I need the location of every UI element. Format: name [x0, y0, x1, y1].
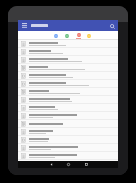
button[interactable]	[18, 136, 118, 144]
button[interactable]	[18, 40, 118, 48]
button[interactable]	[18, 80, 118, 88]
button[interactable]	[18, 152, 118, 160]
button[interactable]	[18, 64, 118, 72]
button[interactable]	[18, 128, 118, 136]
button[interactable]: Slides	[75, 31, 81, 40]
button[interactable]	[18, 144, 118, 152]
button[interactable]	[18, 112, 118, 120]
button[interactable]: Search	[108, 22, 116, 30]
button[interactable]: Open navigation drawer	[20, 21, 29, 30]
button[interactable]	[18, 72, 118, 80]
button[interactable]	[18, 56, 118, 64]
button[interactable]	[18, 96, 118, 104]
button[interactable]	[18, 104, 118, 112]
button[interactable]: Forms	[86, 31, 92, 40]
button[interactable]	[18, 120, 118, 128]
button[interactable]: Documents	[53, 31, 59, 40]
button[interactable]	[18, 48, 118, 56]
button[interactable]: Home	[64, 161, 72, 168]
button[interactable]: Recent apps	[82, 161, 90, 168]
button[interactable]	[18, 88, 118, 96]
button[interactable]: Back	[47, 161, 55, 168]
button[interactable]: Spreadsheets	[64, 31, 70, 40]
